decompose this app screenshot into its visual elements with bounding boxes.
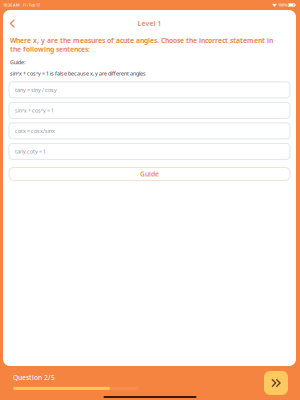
button[interactable]: Next question [264,371,288,395]
button[interactable]: Back [3,15,22,31]
staticText: Level 1 [137,19,161,28]
staticText: Where x, y are the measures of acute ang… [10,36,273,54]
button[interactable]: sin²x + cos²y = 1 [9,102,290,118]
button[interactable]: cotx = cosx/sinx [9,123,290,139]
staticText: sin²x + cos²y = 1 [15,107,54,114]
button[interactable]: tany.coty = 1 [9,143,290,159]
staticText: Guide [140,169,159,178]
staticText: 10:26 AM Fri Feb 17 [3,2,40,8]
button[interactable]: Guide [9,167,290,180]
staticText: Guide: [10,59,25,66]
staticText: sin²x + cos²y = 1 is false because x, y … [10,70,146,77]
staticText: Question 2/5 [13,373,55,382]
staticText: tany = siny / cosy [15,86,57,93]
staticText: cotx = cosx/sinx [15,127,55,134]
button[interactable]: tany = siny / cosy [9,82,290,98]
staticText: tany.coty = 1 [15,148,46,155]
staticText: 100% [277,2,288,8]
